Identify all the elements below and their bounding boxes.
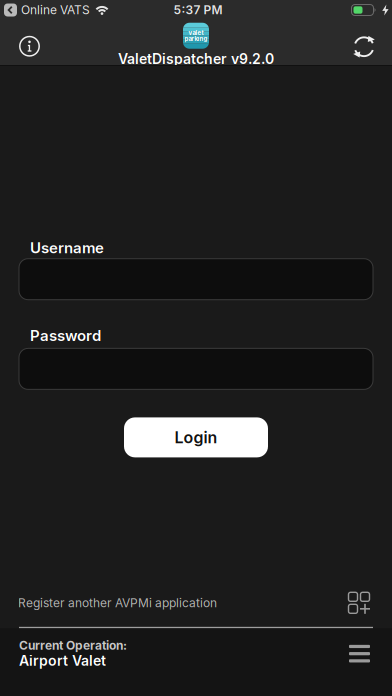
staticText: valet (188, 29, 203, 36)
button[interactable]: Info (19, 36, 40, 57)
staticText: Password (30, 327, 101, 344)
staticText: Register another AVPMi application (18, 596, 217, 610)
button[interactable]: Login (124, 417, 268, 457)
staticText: Login (174, 428, 217, 447)
button[interactable]: Register another AVPMi application (0, 592, 392, 614)
staticText: ValetDispatcher v9.2.0 (118, 51, 274, 67)
staticText: 5:37 PM (173, 3, 222, 17)
staticText: Online VATS (21, 3, 90, 17)
staticText: Current Operation: (19, 638, 127, 652)
staticText: parking (184, 35, 207, 42)
staticText: Airport Valet (19, 652, 106, 669)
button[interactable]: Refresh (353, 36, 375, 58)
staticText: Username (30, 239, 104, 257)
button[interactable]: Menu (349, 645, 370, 662)
